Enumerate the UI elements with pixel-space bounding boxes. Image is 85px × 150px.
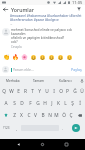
button[interactable]: Fire	[11, 53, 20, 62]
staticText: Y	[38, 88, 41, 95]
button[interactable]: I	[50, 85, 57, 97]
staticText: D	[20, 100, 24, 107]
button[interactable]: P	[64, 85, 71, 97]
button[interactable]: V	[32, 109, 39, 121]
button[interactable]: Backspace	[74, 109, 85, 121]
button[interactable]: F	[26, 97, 34, 109]
button[interactable]: Sad	[56, 53, 65, 62]
button[interactable]: K	[55, 97, 62, 109]
staticText: Q	[2, 88, 6, 95]
button[interactable]: Filter	[75, 5, 83, 13]
button[interactable]: B	[39, 109, 46, 121]
staticText: L	[64, 100, 67, 107]
staticText: G	[36, 100, 40, 107]
button[interactable]: Pray	[65, 53, 74, 62]
button[interactable]: Space	[21, 121, 59, 135]
staticText: E	[17, 88, 20, 95]
staticText: C	[27, 112, 31, 119]
button[interactable]: G	[34, 97, 41, 109]
staticText: B	[41, 112, 45, 119]
button[interactable]: Clap	[2, 53, 11, 62]
button[interactable]: Home	[37, 139, 48, 150]
staticText: ?123	[3, 126, 10, 130]
staticText: S	[13, 100, 16, 107]
button[interactable]: Paylaş	[69, 66, 84, 73]
button[interactable]: J	[48, 97, 55, 109]
button[interactable]: A	[2, 97, 10, 109]
button[interactable]: Symbols	[0, 121, 13, 135]
button[interactable]: ,	[13, 121, 21, 135]
button[interactable]: L	[62, 97, 69, 109]
staticText: 👏	[3, 54, 10, 61]
button[interactable]: U	[43, 85, 50, 97]
button[interactable]: Ç	[67, 109, 74, 121]
button[interactable]: Back	[1, 5, 9, 13]
staticText: K	[57, 100, 60, 107]
staticText: Merhaba	[6, 79, 20, 83]
button[interactable]: H	[41, 97, 48, 109]
button[interactable]: Merhaba	[0, 76, 26, 85]
button[interactable]: Ü	[78, 85, 85, 97]
button[interactable]: Ğ	[71, 85, 78, 97]
staticText: ofislirik ve yaptigim bitirdiknoshod?	[11, 36, 65, 40]
button[interactable]: R	[22, 85, 29, 97]
staticText: cok?	[11, 40, 18, 44]
staticText: Z	[13, 112, 16, 119]
button[interactable]: Y	[36, 85, 43, 97]
button[interactable]: O	[57, 85, 64, 97]
button[interactable]: W	[8, 85, 15, 97]
staticText: N	[48, 112, 52, 119]
staticText: 11:05	[72, 0, 83, 5]
button[interactable]: Recents	[61, 139, 72, 150]
button[interactable]: Shift	[0, 109, 11, 121]
button[interactable]: Laugh	[29, 53, 38, 62]
button[interactable]: Kullanıcı	[52, 76, 78, 85]
button[interactable]: Send	[72, 124, 80, 132]
button[interactable]: M	[53, 109, 60, 121]
staticText: .	[62, 126, 64, 131]
button[interactable]: Z	[11, 109, 18, 121]
button[interactable]: Ö	[60, 109, 67, 121]
button[interactable]: T	[29, 85, 36, 97]
button[interactable]: Ş	[69, 97, 76, 109]
staticText: R	[24, 88, 27, 95]
staticText: U	[45, 88, 49, 95]
staticText: T	[31, 88, 34, 95]
staticText: H	[43, 100, 47, 107]
staticText: X	[20, 112, 23, 119]
staticText: Ğ	[73, 88, 77, 95]
button[interactable]: Love	[38, 53, 47, 62]
button[interactable]: Blossom	[20, 53, 29, 62]
staticText: J	[51, 100, 53, 107]
button[interactable]: D	[18, 97, 26, 109]
staticText: Tamam	[33, 79, 45, 83]
button[interactable]: İ	[76, 97, 83, 109]
staticText: O	[59, 88, 63, 95]
staticText: İ	[79, 100, 81, 107]
button[interactable]: Voice input	[78, 76, 85, 85]
button[interactable]: Wow	[47, 53, 56, 62]
button[interactable]: Q	[0, 85, 8, 97]
staticText: Ü	[80, 88, 84, 95]
staticText: M	[54, 112, 59, 119]
staticText: 🔥	[12, 54, 19, 61]
staticText: #konferansdan #pazar #bolgece	[10, 18, 59, 22]
button[interactable]: S	[10, 97, 18, 109]
button[interactable]: Tamam	[26, 76, 52, 85]
staticText: Kullanıcı	[59, 79, 72, 83]
staticText: Ç	[69, 112, 73, 119]
button[interactable]: Back	[13, 139, 24, 150]
staticText: 🌸	[21, 54, 28, 61]
staticText: F	[29, 100, 32, 107]
button[interactable]: X	[18, 109, 25, 121]
staticText: Paylaş	[71, 67, 82, 72]
button[interactable]: E	[15, 85, 22, 97]
staticText: P	[66, 88, 69, 95]
staticText: ...	[10, 22, 13, 26]
staticText: Ö	[62, 112, 66, 119]
button[interactable]: C	[25, 109, 32, 121]
staticText: Yorum ekle...	[13, 67, 34, 72]
button[interactable]: N	[46, 109, 53, 121]
staticText: I	[53, 88, 55, 95]
